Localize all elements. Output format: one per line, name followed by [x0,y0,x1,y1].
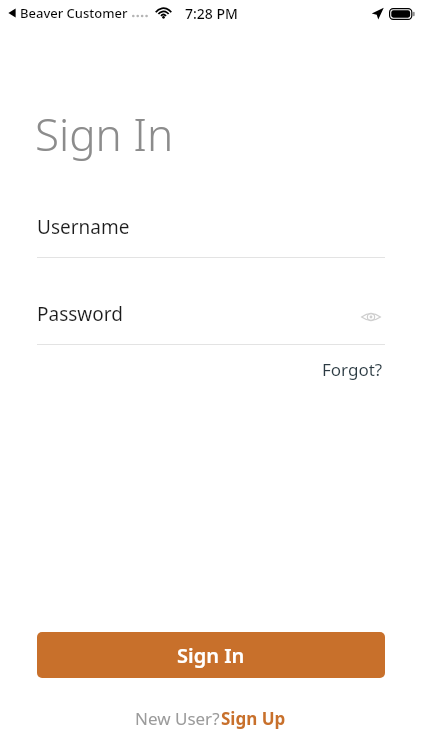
button[interactable]: Username [37,214,385,258]
button[interactable]: Sign Up [220,705,287,732]
button[interactable]: Forgot? [320,356,385,383]
staticText: Sign Up [221,707,286,730]
staticText: Sign In [177,642,245,669]
button[interactable]: Sign In [37,632,385,678]
button[interactable]: Show password [357,303,385,331]
staticText: New User? [135,707,220,730]
staticText: 7:28 PM [185,4,238,23]
staticText: Sign In [35,104,174,164]
button[interactable]: Password [37,301,123,327]
staticText: Beaver Customer [20,4,128,22]
staticText: Forgot? [322,358,383,381]
staticText: Username [37,214,130,240]
